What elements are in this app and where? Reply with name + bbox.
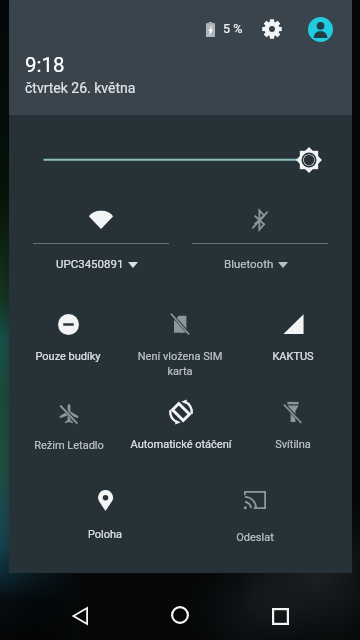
button[interactable]: Odeslat xyxy=(199,474,311,546)
button[interactable]: Settings xyxy=(262,19,282,39)
button[interactable]: Pouze budíky xyxy=(12,298,124,370)
staticText: UPC3450891 xyxy=(56,257,124,270)
button[interactable]: Back xyxy=(54,590,106,640)
button[interactable]: Recent apps xyxy=(254,590,306,640)
button[interactable]: User profile xyxy=(308,17,333,42)
button[interactable]: Poloha xyxy=(49,474,161,546)
staticText: KAKTUS xyxy=(237,350,349,363)
staticText: Režim Letadlo xyxy=(13,439,125,452)
button[interactable]: Není vložena SIM karta xyxy=(124,298,236,370)
staticText: Automatické otáčení xyxy=(125,438,237,451)
staticText: Poloha xyxy=(49,528,161,541)
staticText: Pouze budíky xyxy=(12,350,124,363)
button[interactable]: Režim Letadlo xyxy=(13,387,125,459)
button[interactable]: Svítilna xyxy=(237,386,349,458)
staticText: Není vložena SIM karta xyxy=(124,350,236,378)
staticText: čtvrtek 26. května xyxy=(25,80,136,96)
staticText: Odeslat xyxy=(199,531,311,544)
button[interactable]: Wi-Fi xyxy=(22,186,180,282)
button[interactable]: KAKTUS xyxy=(237,298,349,370)
staticText: Svítilna xyxy=(237,438,349,451)
staticText: 5 % xyxy=(223,21,243,36)
button[interactable]: Automatické otáčení xyxy=(125,386,237,458)
button[interactable]: Bluetooth xyxy=(181,186,339,282)
button[interactable]: Home xyxy=(154,589,206,640)
button[interactable]: Brightness xyxy=(296,147,322,173)
staticText: 9:18 xyxy=(25,53,65,77)
staticText: Bluetooth xyxy=(224,257,274,270)
